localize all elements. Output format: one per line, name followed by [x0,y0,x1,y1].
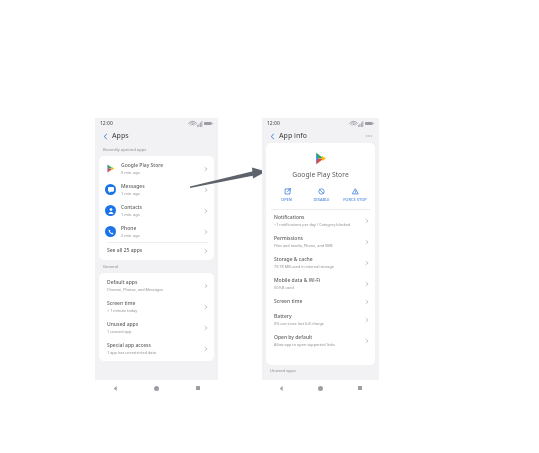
staticText: Unused apps [270,368,296,374]
staticText: 1 min. ago [121,191,140,196]
staticText: Open by default [274,334,313,341]
staticText: 1 unused app [107,329,132,334]
staticText: Contacts [121,204,142,211]
button[interactable]: Screen time [99,296,214,317]
staticText: Notifications [274,214,305,221]
button[interactable]: Battery [266,309,375,330]
staticText: App info [279,131,308,141]
staticText: 2 min. ago [121,233,140,238]
staticText: Battery [274,313,292,320]
staticText: Allow app to open supported links [274,342,335,347]
staticText: 79.78 MB used in internal storage [274,264,334,269]
staticText: 1 app has unrestricted data [107,350,156,355]
staticText: Screen time [274,298,303,305]
staticText: Storage & cache [274,256,313,263]
staticText: 50 KB used [274,285,294,290]
button[interactable]: DISABLE [304,186,338,203]
staticText: Files and media, Phone, and SMS [274,243,333,248]
staticText: FORCE STOP [343,197,367,202]
button[interactable]: Mobile data & Wi-Fi [266,273,375,294]
staticText: 0 min. ago [121,170,140,175]
staticText: Permissions [274,235,303,242]
staticText: Apps [112,131,129,141]
button[interactable]: More options [364,131,374,141]
button[interactable]: Permissions [266,231,375,252]
button[interactable]: Google Play Store [99,158,214,179]
button[interactable]: Messages [99,179,214,200]
button[interactable]: Back [262,380,301,396]
button[interactable]: FORCE STOP [338,186,372,203]
button[interactable]: Back [95,380,136,396]
staticText: DISABLE [313,197,330,202]
staticText: Special app access [107,342,151,349]
staticText: 1 min. ago [121,212,140,217]
button[interactable]: Default apps [99,275,214,296]
staticText: Recently opened apps [103,147,147,153]
button[interactable]: Phone [99,221,214,242]
staticText: < 1 minute today [107,308,138,313]
button[interactable]: Back [267,131,278,142]
button[interactable]: Back [100,131,111,142]
staticText: Default apps [107,279,138,286]
staticText: 0% use since last full charge [274,321,324,326]
button[interactable]: Home [301,380,340,396]
staticText: 12:00 [267,120,280,127]
button[interactable]: Contacts [99,200,214,221]
staticText: Unused apps [107,321,139,328]
button[interactable]: Special app access [99,338,214,359]
button[interactable]: Notifications [266,210,375,231]
staticText: OPEN [281,197,292,202]
staticText: 12:00 [100,120,113,127]
button[interactable]: Unused apps [99,317,214,338]
staticText: Phone [121,225,137,232]
staticText: Mobile data & Wi-Fi [274,277,321,284]
staticText: Screen time [107,300,136,307]
staticText: Messages [121,183,145,190]
staticText: Google Play Store [266,170,375,179]
button[interactable]: OPEN [269,186,304,203]
button[interactable]: Recent apps [340,380,379,396]
staticText: See all 25 apps [107,247,143,254]
button[interactable]: Storage & cache [266,252,375,273]
staticText: Google Play Store [121,162,164,169]
button[interactable]: Open by default [266,330,375,351]
staticText: Chrome, Photos, and Messages [107,287,164,292]
staticText: General [103,264,119,270]
button[interactable]: Screen time [266,294,375,309]
staticText: ~1 notifications per day / Category bloc… [274,222,351,227]
button[interactable]: Home [136,380,177,396]
button[interactable]: Recent apps [177,380,218,396]
button[interactable]: See all 25 apps [99,243,214,258]
